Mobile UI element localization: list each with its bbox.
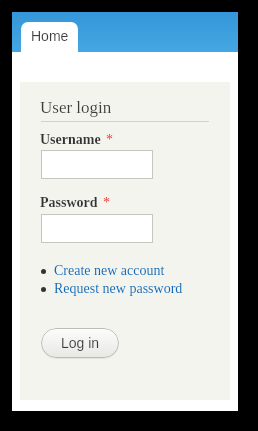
button[interactable]: Create new account (41, 262, 165, 280)
staticText: Username (40, 132, 101, 148)
button[interactable] (41, 214, 153, 243)
staticText: Home (31, 28, 69, 44)
staticText: Log in (61, 335, 100, 351)
button[interactable]: Log in (41, 328, 119, 358)
button[interactable] (41, 150, 153, 179)
staticText: User login (40, 98, 112, 117)
staticText: * (106, 132, 113, 148)
staticText: * (103, 195, 110, 211)
staticText: Request new password (54, 281, 183, 297)
staticText: Create new account (54, 263, 165, 279)
staticText: Password (40, 195, 98, 211)
button[interactable]: Home (21, 22, 78, 52)
button[interactable]: Request new password (41, 280, 183, 298)
